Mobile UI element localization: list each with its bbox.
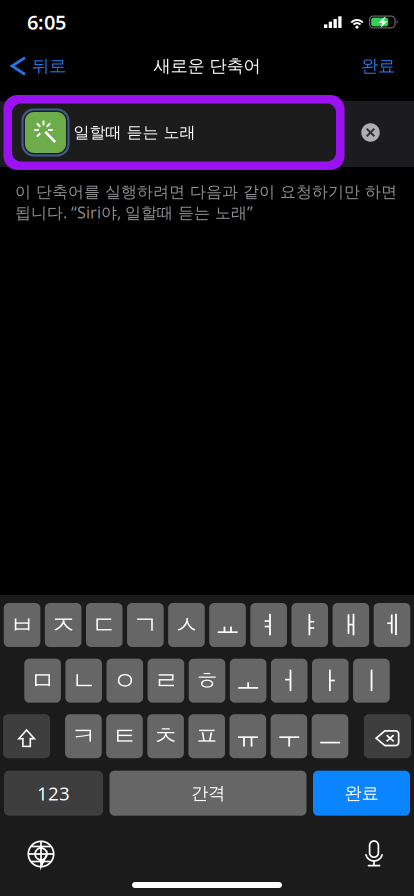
button[interactable]: ㅡ — [312, 714, 348, 758]
button[interactable]: 받아쓰기 — [352, 832, 396, 876]
button[interactable]: ㅋ — [65, 714, 102, 758]
button[interactable]: 삭제 — [364, 714, 411, 758]
button[interactable]: ㅠ — [229, 714, 266, 758]
button[interactable]: ㅂ — [4, 603, 40, 647]
staticText: ㄹ — [153, 665, 178, 696]
staticText: ㅈ — [51, 609, 76, 640]
button[interactable]: 123 — [4, 771, 103, 816]
staticText: ㅎ — [194, 665, 219, 696]
button[interactable]: 뒤로 — [0, 47, 66, 85]
button[interactable]: ㄴ — [65, 659, 102, 703]
button[interactable]: ㅛ — [209, 603, 246, 647]
staticText: 완료 — [361, 55, 395, 77]
button[interactable]: ㅎ — [189, 659, 225, 703]
button[interactable]: ㄱ — [127, 603, 164, 647]
staticText: 이 단축어를 실행하려면 다음과 같이 요청하기만 하면 됩니다. “Siri야… — [15, 182, 397, 223]
staticText: ㅠ — [235, 721, 260, 752]
staticText: ㅑ — [297, 609, 322, 640]
button[interactable]: ㅁ — [24, 659, 61, 703]
staticText: ㅊ — [153, 721, 178, 752]
staticText: ㅇ — [112, 665, 137, 696]
button[interactable]: ㅐ — [332, 603, 369, 647]
button[interactable]: ㅕ — [250, 603, 287, 647]
staticText: ㄱ — [133, 609, 158, 640]
staticText: 간격 — [191, 783, 225, 804]
staticText: ㅂ — [9, 609, 34, 640]
button[interactable]: ㄹ — [148, 659, 184, 703]
button[interactable]: ㅣ — [353, 659, 390, 703]
staticText: ㅔ — [379, 609, 404, 640]
staticText: ㅛ — [215, 609, 240, 640]
button[interactable]: 완료 — [313, 771, 410, 816]
button[interactable]: Shift — [3, 714, 50, 758]
button[interactable]: ㅜ — [271, 714, 307, 758]
button[interactable]: ㅔ — [374, 603, 410, 647]
staticText: 새로운 단축어 — [153, 55, 260, 77]
staticText: ㅐ — [338, 609, 363, 640]
staticText: 뒤로 — [32, 55, 66, 77]
staticText: ㅌ — [112, 721, 137, 752]
button[interactable]: ㅊ — [147, 714, 184, 758]
button[interactable]: ㅏ — [312, 659, 349, 703]
button[interactable]: ㅅ — [168, 603, 205, 647]
staticText: ㅓ — [277, 665, 302, 696]
button[interactable]: ㅍ — [188, 714, 225, 758]
staticText: ㅏ — [318, 665, 343, 696]
staticText: ㅅ — [174, 609, 199, 640]
staticText: 123 — [37, 781, 70, 806]
button[interactable]: ㅓ — [271, 659, 307, 703]
button[interactable]: ㅈ — [45, 603, 81, 647]
button[interactable]: 간격 — [109, 771, 306, 816]
staticText: ㄷ — [92, 609, 117, 640]
staticText: ㅡ — [317, 721, 342, 752]
button[interactable]: 다음 키보드 — [19, 832, 63, 876]
staticText: ㅍ — [194, 721, 219, 752]
staticText: ㅕ — [256, 609, 281, 640]
button[interactable]: ㅌ — [106, 714, 143, 758]
staticText: ㅋ — [71, 721, 96, 752]
staticText: ㅣ — [359, 665, 384, 696]
button[interactable]: ㅇ — [106, 659, 143, 703]
staticText: ㅜ — [276, 721, 301, 752]
staticText: ㅁ — [30, 665, 55, 696]
staticText: ㄴ — [71, 665, 96, 696]
button[interactable]: ㅗ — [230, 659, 266, 703]
staticText: 완료 — [344, 783, 378, 804]
staticText: 6:05 — [27, 9, 66, 35]
staticText: ㅗ — [236, 665, 261, 696]
staticText: 일할때 듣는 노래 — [73, 123, 195, 142]
button[interactable]: 지우기 — [344, 106, 396, 158]
button[interactable]: ㄷ — [86, 603, 122, 647]
button[interactable]: ㅑ — [291, 603, 328, 647]
button[interactable]: 완료 — [361, 47, 414, 85]
